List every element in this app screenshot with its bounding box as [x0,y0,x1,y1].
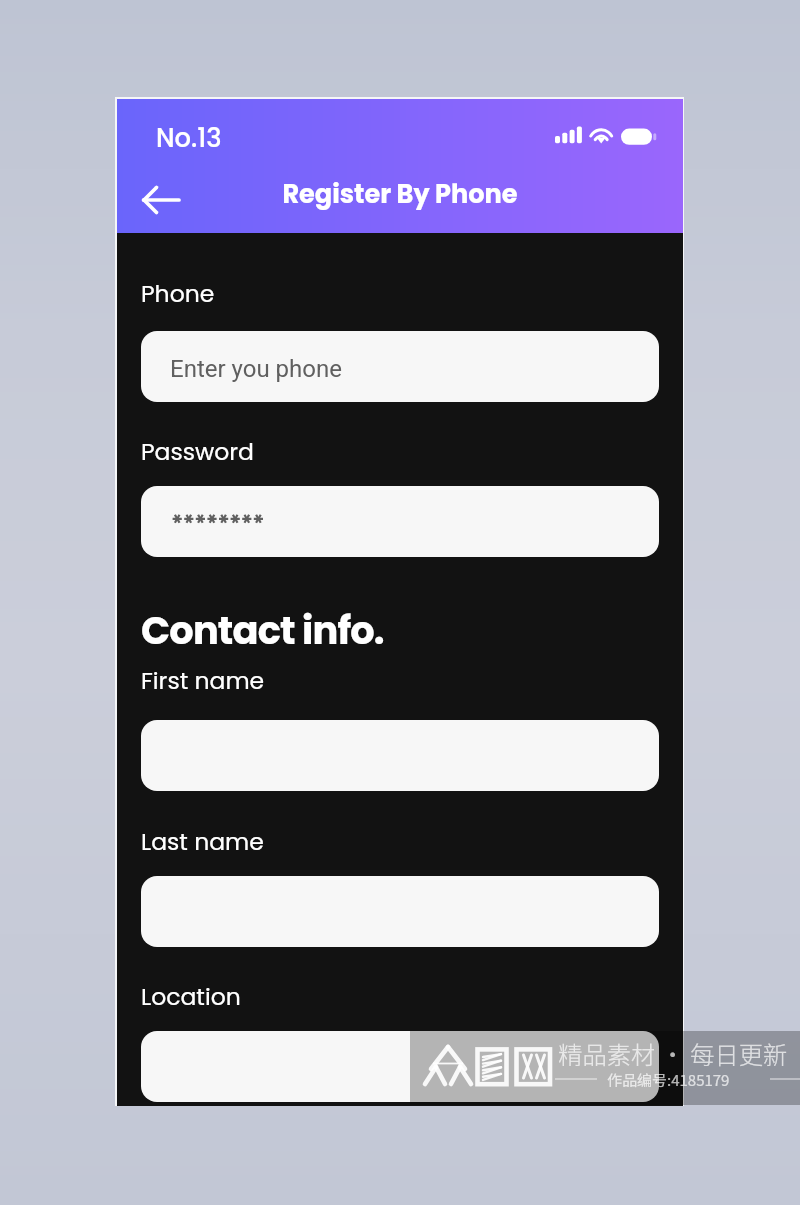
button[interactable]: Back [133,172,189,228]
staticText: Location [141,980,241,1013]
button[interactable] [141,486,659,557]
staticText: Password [141,435,254,468]
staticText: 精品素材 · 每日更新 [558,1036,788,1071]
staticText: 作品编号:4185179 [607,1069,730,1091]
staticText: Register By Phone [117,176,683,212]
staticText: Phone [141,277,215,310]
staticText: Last name [141,825,264,858]
staticText: First name [141,664,265,697]
button[interactable] [141,720,659,791]
staticText: No.13 [156,120,222,156]
button[interactable]: Enter you phone [141,331,659,402]
staticText: Contact info. [141,604,384,658]
staticText: Enter you phone [170,355,342,383]
button[interactable] [141,876,659,947]
button[interactable] [141,1031,659,1102]
